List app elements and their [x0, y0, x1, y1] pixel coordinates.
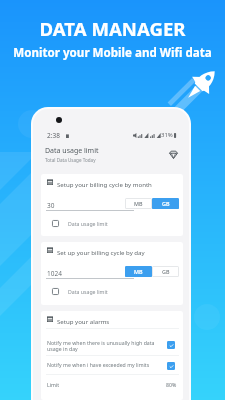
- staticText: Notify me when there is unusually high d…: [47, 339, 156, 353]
- staticText: Total Data Usage Today: [45, 157, 96, 163]
- staticText: 31%: [161, 131, 173, 139]
- button[interactable]: Data usage limit: [52, 217, 108, 230]
- staticText: Monitor your Mobile and Wifi data: [13, 45, 212, 61]
- staticText: Setup your alarms: [57, 317, 110, 325]
- staticText: 2:38: [47, 131, 60, 140]
- staticText: MB: [134, 200, 143, 207]
- staticText: 80%: [166, 381, 177, 388]
- staticText: Setup your billing cycle by month: [57, 180, 152, 188]
- staticText: Data usage limit: [68, 220, 108, 227]
- button[interactable]: MB: [126, 199, 151, 208]
- button[interactable]: GB: [153, 267, 178, 276]
- button[interactable]: [41, 357, 183, 375]
- staticText: Set up your billing cycle by day: [57, 248, 145, 256]
- staticText: Limit: [47, 381, 60, 388]
- staticText: 1024: [47, 269, 62, 278]
- button[interactable]: Premium: [165, 146, 181, 162]
- staticText: Data usage limit: [68, 288, 108, 295]
- button[interactable]: Data usage limit: [52, 285, 108, 298]
- button[interactable]: [41, 335, 183, 353]
- staticText: DATA MANAGER: [39, 16, 186, 41]
- button[interactable]: MB: [125, 266, 152, 277]
- staticText: 30: [47, 201, 55, 210]
- staticText: GB: [162, 200, 170, 207]
- button[interactable]: GB: [152, 198, 179, 209]
- staticText: GB: [162, 268, 170, 275]
- staticText: Notify me when i have exceeded my limits: [47, 361, 156, 368]
- staticText: MB: [134, 268, 143, 275]
- staticText: Data usage limit: [45, 146, 99, 156]
